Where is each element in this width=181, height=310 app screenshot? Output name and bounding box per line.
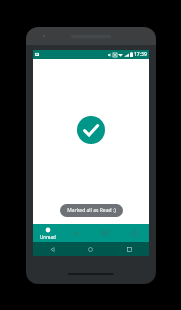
button[interactable]: Recents <box>110 242 149 256</box>
staticText: 17:39 <box>134 51 147 58</box>
button[interactable]: Marked all as Read :) <box>60 204 123 217</box>
button[interactable]: All articles <box>91 224 120 242</box>
button[interactable]: Home <box>71 242 110 256</box>
staticText: Marked all as Read :) <box>67 207 116 214</box>
button[interactable]: Account <box>120 224 149 242</box>
staticText: Unread <box>40 234 56 240</box>
button[interactable]: Unread <box>33 224 62 242</box>
button[interactable]: Starred <box>62 224 91 242</box>
button[interactable]: Back <box>33 242 71 256</box>
